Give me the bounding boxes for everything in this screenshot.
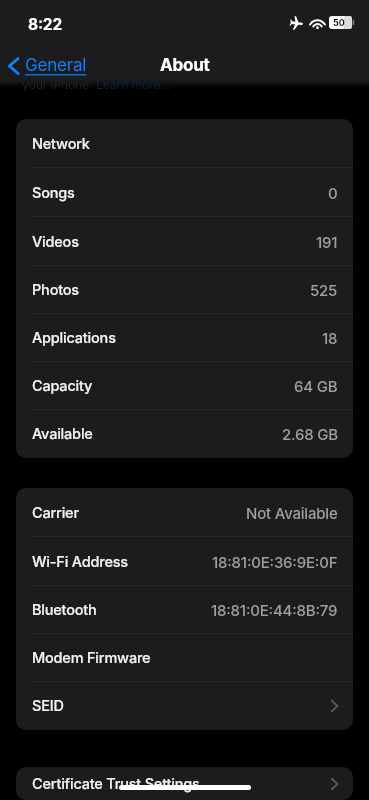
button[interactable]: Modem Firmware	[16, 634, 353, 682]
other: Airplane mode	[288, 16, 305, 30]
button[interactable]: Certificate Trust Settings	[16, 767, 353, 800]
staticText: Carrier	[32, 504, 79, 522]
button[interactable]: SEID	[16, 682, 353, 730]
staticText: 18:81:0E:36:9E:0F	[212, 553, 338, 571]
staticText: About	[160, 55, 210, 76]
staticText: Capacity	[32, 377, 93, 395]
button[interactable]: Capacity	[16, 362, 353, 410]
staticText: Modem Firmware	[32, 649, 151, 667]
button[interactable]: General	[0, 51, 95, 80]
button[interactable]: Carrier	[16, 488, 353, 537]
button[interactable]: Available	[16, 410, 353, 458]
staticText: General	[25, 55, 87, 76]
button[interactable]: Applications	[16, 314, 353, 362]
staticText: Certificate Trust Settings	[32, 775, 200, 793]
staticText: Songs	[32, 184, 75, 202]
button[interactable]: Songs	[16, 168, 353, 217]
staticText: 525	[310, 281, 338, 299]
staticText: 18:81:0E:44:8B:79	[211, 601, 338, 619]
staticText: 64 GB	[294, 377, 338, 395]
button[interactable]: Bluetooth	[16, 586, 353, 634]
staticText: Not Available	[246, 504, 338, 522]
staticText: 0	[328, 184, 338, 202]
staticText: SEID	[32, 697, 64, 715]
other: Battery 50 percent	[329, 16, 355, 29]
staticText: Photos	[32, 281, 79, 299]
staticText: Learn more...	[96, 77, 171, 92]
staticText: Bluetooth	[32, 601, 97, 619]
button[interactable]: Network	[16, 119, 353, 168]
staticText: 2.68 GB	[282, 425, 338, 443]
staticText: your iPhone.	[22, 77, 96, 92]
staticText: Wi-Fi Address	[32, 553, 128, 571]
staticText: Available	[32, 425, 93, 443]
staticText: Applications	[32, 329, 116, 347]
other: Wi-Fi	[310, 17, 325, 29]
staticText: 18	[322, 329, 338, 347]
button[interactable]: Wi-Fi Address	[16, 537, 353, 586]
staticText: 8:22	[28, 15, 62, 34]
button[interactable]: Videos	[16, 217, 353, 266]
button[interactable]: Photos	[16, 266, 353, 314]
staticText: Network	[32, 135, 90, 153]
staticText: Videos	[32, 233, 79, 251]
staticText: 191	[316, 233, 338, 251]
staticText: 50	[333, 17, 345, 28]
